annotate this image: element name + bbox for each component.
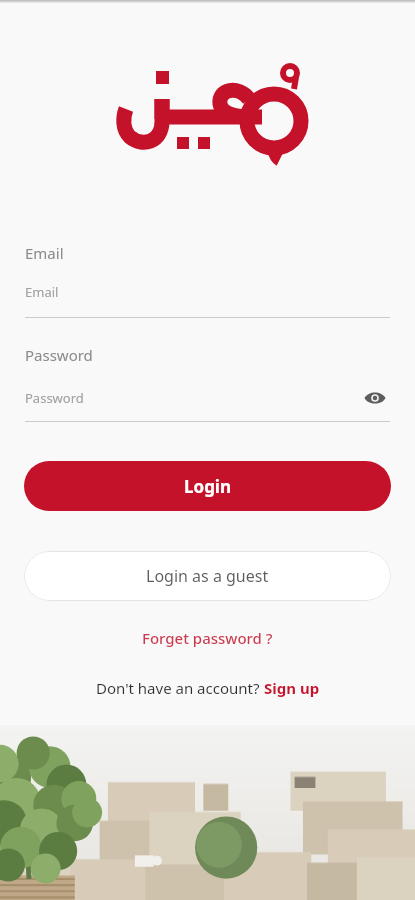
staticText: Login bbox=[184, 475, 232, 498]
button[interactable]: Login as a guest bbox=[24, 551, 391, 601]
staticText: Login as a guest bbox=[146, 565, 269, 587]
staticText: Don't have an account? bbox=[96, 678, 264, 698]
staticText: Sign up bbox=[264, 678, 320, 698]
button[interactable]: Show password bbox=[360, 383, 390, 413]
staticText: Forget password ? bbox=[142, 628, 273, 648]
staticText: Password bbox=[25, 389, 84, 407]
staticText: Email bbox=[25, 243, 64, 263]
button[interactable]: Login bbox=[24, 461, 391, 511]
button[interactable]: Sign up bbox=[264, 678, 320, 698]
button[interactable]: Forget password ? bbox=[130, 623, 285, 653]
staticText: Password bbox=[25, 345, 93, 365]
staticText: Email bbox=[25, 283, 59, 301]
